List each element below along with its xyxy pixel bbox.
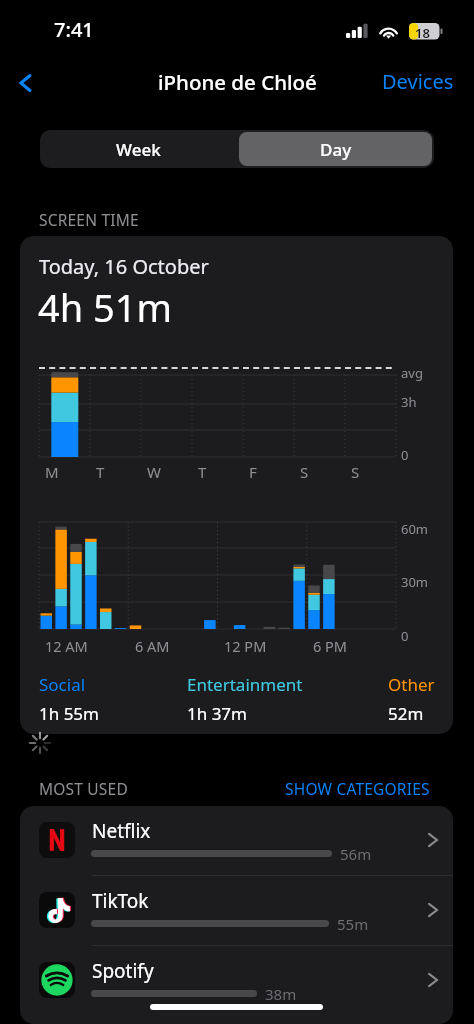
staticText: 7:41 (54, 16, 94, 43)
button[interactable]: Back (8, 65, 44, 101)
staticText: SCREEN TIME (39, 209, 139, 230)
button[interactable]: Netflix (20, 806, 453, 875)
staticText: MOST USED (39, 778, 128, 799)
staticText: 1h 55m (39, 702, 99, 725)
staticText: 0 (401, 446, 409, 464)
staticText: Week (116, 138, 161, 161)
staticText: 30m (401, 573, 429, 591)
staticText: 12 PM (224, 636, 267, 656)
staticText: 6 AM (135, 636, 170, 656)
staticText: S (351, 462, 360, 482)
staticText: Devices (382, 68, 454, 95)
button[interactable]: Day (239, 132, 432, 166)
staticText: 52m (388, 702, 424, 725)
staticText: 1h 37m (187, 702, 247, 725)
staticText: Entertainment (187, 673, 303, 696)
button[interactable]: SHOW CATEGORIES (285, 778, 430, 799)
staticText: 60m (401, 520, 429, 538)
staticText: T (96, 462, 105, 482)
staticText: 6 PM (313, 636, 347, 656)
staticText: 18 (415, 24, 430, 42)
staticText: T (198, 462, 207, 482)
staticText: M (45, 462, 59, 482)
staticText: F (249, 462, 257, 482)
staticText: SHOW CATEGORIES (285, 778, 430, 799)
button[interactable]: TikTok (20, 876, 453, 945)
staticText: 56m (340, 844, 372, 864)
staticText: Spotify (92, 958, 154, 984)
staticText: 12 AM (45, 636, 88, 656)
staticText: 3h (401, 393, 417, 411)
staticText: avg (401, 364, 423, 382)
staticText: Social (39, 673, 86, 696)
staticText: Netflix (92, 818, 151, 844)
button[interactable]: Devices (382, 68, 454, 95)
staticText: 0 (401, 627, 409, 645)
staticText: TikTok (92, 888, 149, 914)
staticText: 55m (337, 914, 369, 934)
staticText: W (147, 462, 161, 482)
staticText: Day (320, 138, 352, 161)
staticText: Today, 16 October (39, 253, 209, 280)
staticText: 4h 51m (38, 281, 173, 333)
button[interactable]: Week (40, 130, 237, 168)
button[interactable]: Spotify (20, 946, 453, 1015)
staticText: Other (388, 673, 435, 696)
staticText: iPhone de Chloé (158, 68, 317, 96)
staticText: 38m (265, 984, 297, 1004)
staticText: S (300, 462, 309, 482)
